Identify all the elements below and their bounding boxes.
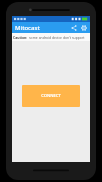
staticText: some android device don't support screen… — [29, 35, 89, 40]
staticText: Caution: — [13, 35, 28, 40]
button[interactable]: Share — [69, 23, 78, 32]
button[interactable]: Settings — [79, 23, 88, 32]
staticText: CONNECT — [41, 93, 61, 99]
button[interactable]: CONNECT — [22, 85, 80, 107]
staticText: Mitocast — [15, 24, 40, 32]
